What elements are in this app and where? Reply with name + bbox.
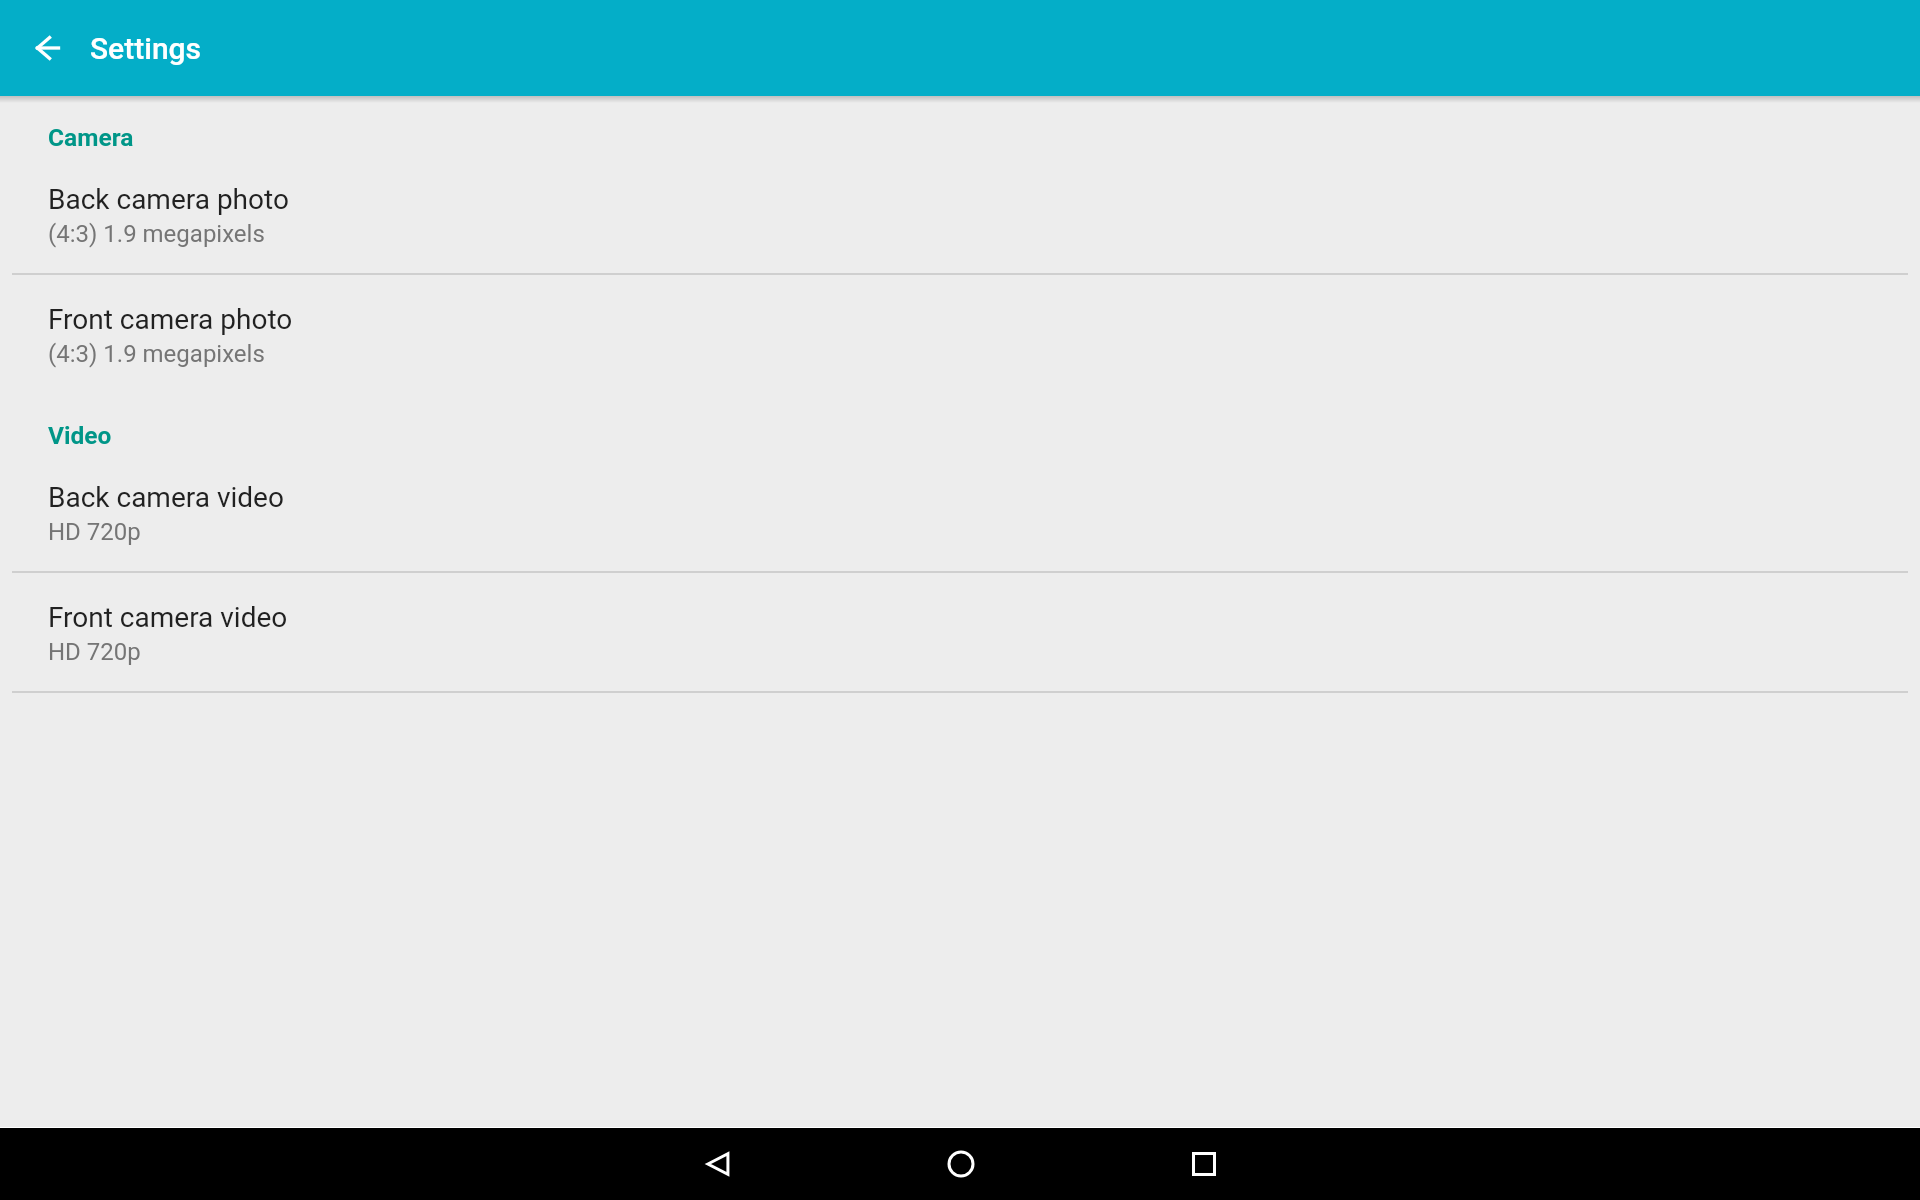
- staticText: (4:3) 1.9 megapixels: [48, 220, 265, 248]
- staticText: Front camera video: [48, 601, 288, 634]
- button[interactable]: Front camera video: [0, 573, 1920, 691]
- staticText: (4:3) 1.9 megapixels: [48, 340, 265, 368]
- button[interactable]: Back: [596, 1128, 839, 1200]
- button[interactable]: Back camera photo: [0, 155, 1920, 273]
- staticText: HD 720p: [48, 518, 141, 546]
- staticText: Video: [48, 421, 112, 450]
- staticText: Front camera photo: [48, 303, 293, 336]
- button[interactable]: Front camera photo: [0, 275, 1920, 393]
- staticText: Settings: [90, 31, 202, 66]
- button[interactable]: Recent apps: [1082, 1128, 1325, 1200]
- button[interactable]: Home: [839, 1128, 1082, 1200]
- staticText: Back camera video: [48, 481, 284, 514]
- button[interactable]: Navigate up: [0, 0, 90, 96]
- staticText: HD 720p: [48, 638, 141, 666]
- staticText: Back camera photo: [48, 183, 289, 216]
- button[interactable]: Back camera video: [0, 453, 1920, 571]
- staticText: Camera: [48, 123, 134, 152]
